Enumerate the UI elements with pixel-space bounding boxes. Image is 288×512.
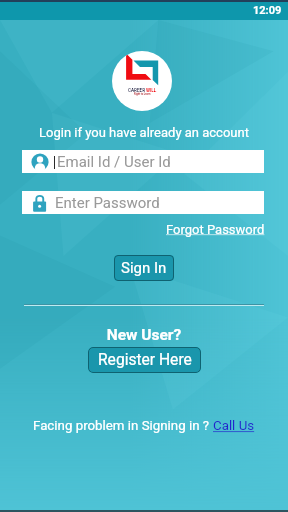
button[interactable]: Forgot Password <box>166 222 265 237</box>
staticText: Facing problem in Signing in ? <box>33 418 213 434</box>
staticText: Enter Password <box>55 194 160 212</box>
staticText: 12:09 <box>253 4 282 17</box>
staticText: Sign In <box>121 259 167 277</box>
staticText: Email Id / User Id <box>57 153 171 171</box>
staticText: Right to Learn <box>134 93 151 96</box>
button[interactable]: Sign In <box>114 255 174 281</box>
button[interactable]: Call Us <box>213 418 255 434</box>
button[interactable]: Enter Password <box>22 191 264 214</box>
button[interactable]: Register Here <box>88 347 201 373</box>
staticText: New User? <box>0 326 288 344</box>
button[interactable]: Email Id / User Id <box>22 150 264 173</box>
staticText: Login if you have already an account <box>0 125 288 140</box>
staticText: CAREER <box>128 88 146 93</box>
staticText: Call Us <box>213 418 255 434</box>
staticText: Register Here <box>98 351 192 369</box>
staticText: WILL <box>146 88 157 93</box>
staticText: Forgot Password <box>166 222 265 237</box>
